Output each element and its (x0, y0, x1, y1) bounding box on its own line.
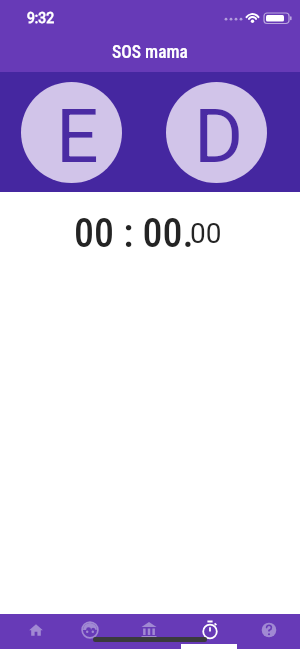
staticText: D (194, 92, 244, 180)
button[interactable]: D (166, 82, 267, 183)
button[interactable] (247, 614, 291, 647)
button[interactable] (14, 614, 58, 647)
button[interactable] (127, 614, 171, 647)
staticText: 00 (190, 217, 222, 250)
staticText: E (56, 92, 99, 180)
button[interactable] (188, 614, 232, 647)
staticText: SOS mama (112, 42, 188, 63)
staticText: 00 : 00. (74, 210, 194, 257)
button[interactable]: E (21, 82, 122, 183)
button[interactable] (68, 614, 112, 647)
staticText: 9:32 (27, 10, 54, 26)
